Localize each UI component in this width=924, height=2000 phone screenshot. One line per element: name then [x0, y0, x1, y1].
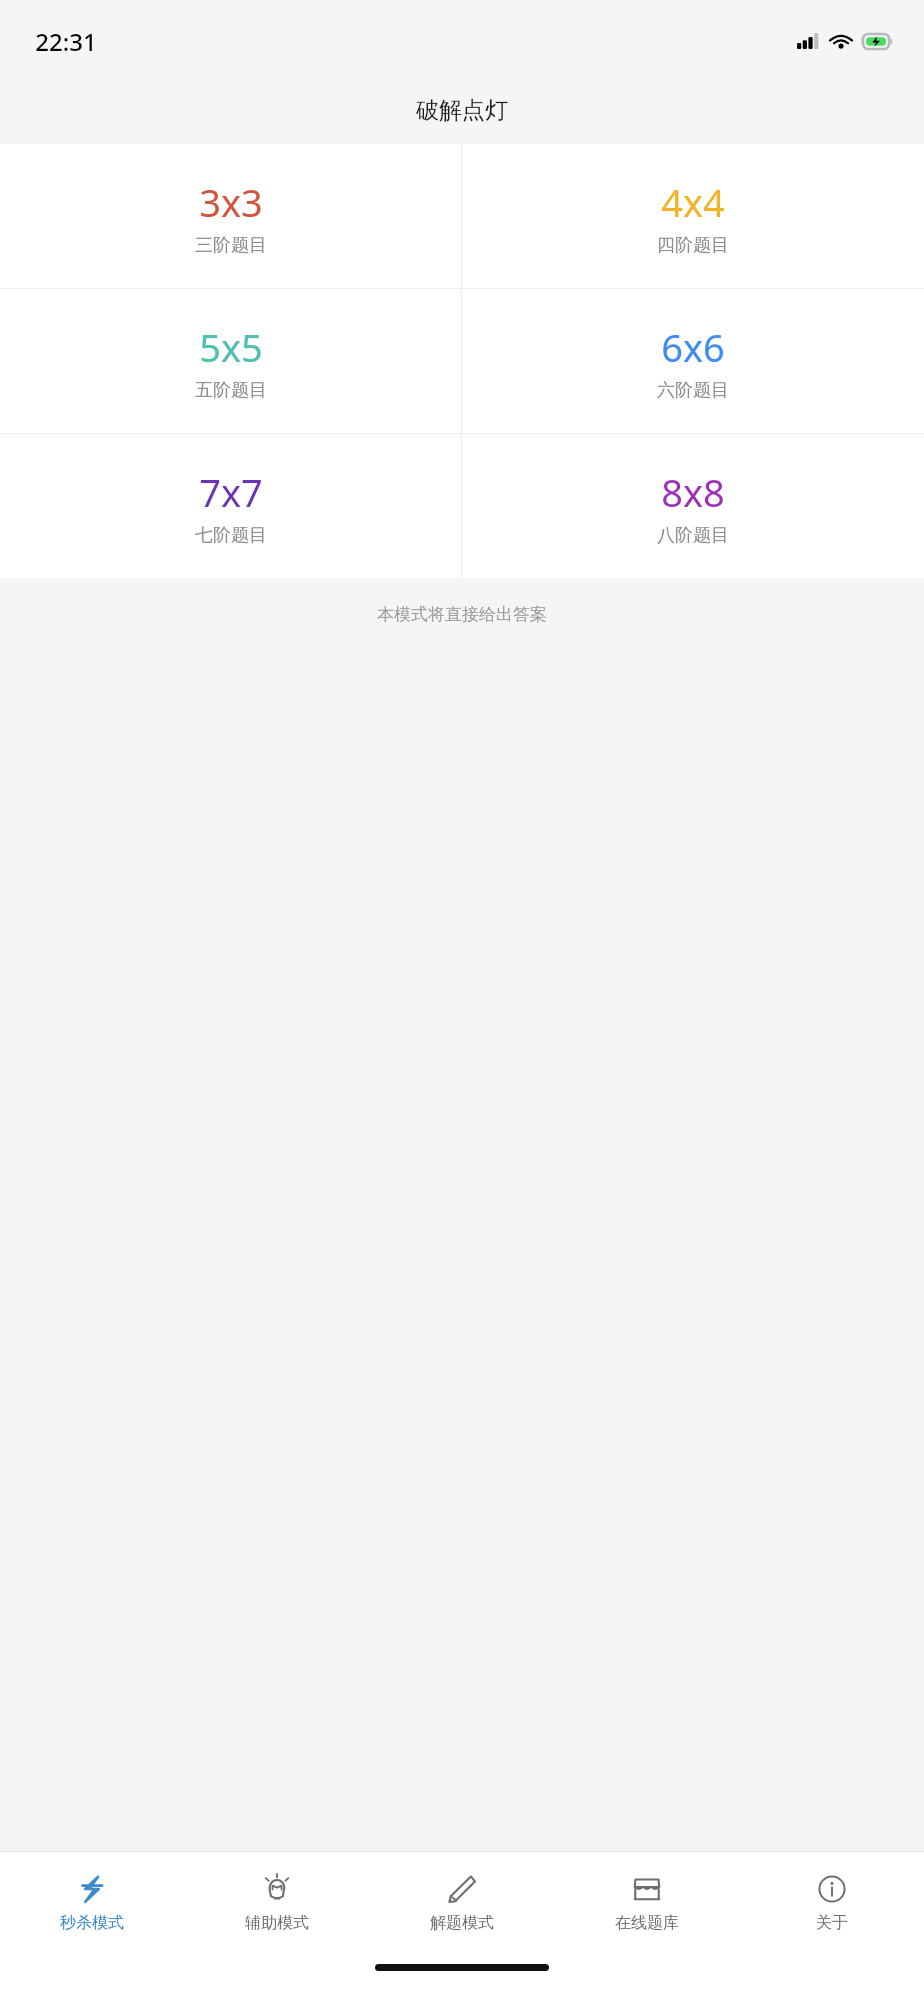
staticText: 秒杀模式	[60, 1913, 124, 1933]
staticText: 四阶题目	[657, 234, 729, 257]
button[interactable]: 秒杀模式	[0, 1852, 184, 1952]
staticText: 5x5	[199, 321, 263, 373]
button[interactable]: 8x8	[462, 434, 924, 578]
button[interactable]: 4x4	[462, 144, 924, 288]
button[interactable]: 7x7	[0, 434, 461, 578]
button[interactable]: 在线题库	[554, 1852, 739, 1952]
staticText: 八阶题目	[657, 524, 729, 547]
staticText: 七阶题目	[195, 524, 267, 547]
staticText: 关于	[816, 1913, 848, 1933]
staticText: 破解点灯	[416, 96, 508, 125]
staticText: 五阶题目	[195, 379, 267, 402]
staticText: 六阶题目	[657, 379, 729, 402]
button[interactable]: 解题模式	[369, 1852, 554, 1952]
button[interactable]: 3x3	[0, 144, 461, 288]
button[interactable]: 辅助模式	[184, 1852, 369, 1952]
button[interactable]: 关于	[739, 1852, 924, 1952]
staticText: 辅助模式	[245, 1913, 309, 1933]
staticText: 4x4	[661, 176, 725, 228]
staticText: 22:31	[35, 25, 97, 58]
staticText: 7x7	[199, 466, 263, 518]
staticText: 三阶题目	[195, 234, 267, 257]
button[interactable]: 6x6	[462, 289, 924, 433]
staticText: 解题模式	[430, 1913, 494, 1933]
staticText: 6x6	[661, 321, 725, 373]
staticText: 8x8	[661, 466, 725, 518]
button[interactable]: 5x5	[0, 289, 461, 433]
staticText: 本模式将直接给出答案	[377, 604, 547, 625]
staticText: 在线题库	[615, 1913, 679, 1933]
staticText: 3x3	[199, 176, 263, 228]
